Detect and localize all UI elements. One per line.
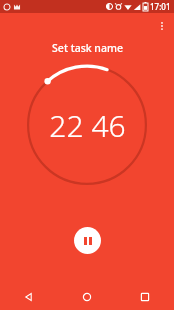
button[interactable]: Pause [74, 227, 101, 254]
staticText: Set task name [52, 41, 123, 55]
button[interactable]: Back [0, 283, 58, 310]
staticText: 22 46 [49, 105, 126, 146]
staticText: 17:01 [150, 1, 171, 12]
button[interactable]: Recent apps [116, 283, 174, 310]
button[interactable]: More options [150, 14, 174, 38]
button[interactable]: Set task name [0, 41, 174, 55]
button[interactable]: Home [58, 283, 116, 310]
